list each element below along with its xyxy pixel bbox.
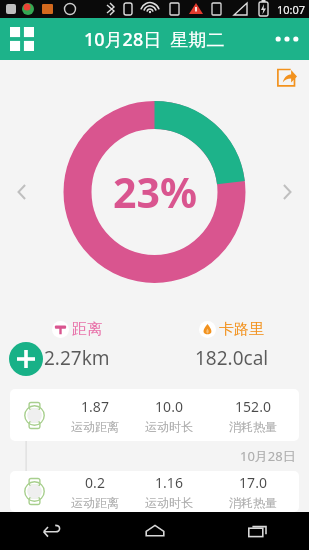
- button[interactable]: Add: [9, 342, 43, 376]
- staticText: 10月28日: [240, 447, 296, 465]
- staticText: 消耗热量: [229, 495, 277, 510]
- staticText: 消耗热量: [229, 419, 277, 434]
- staticText: 运动时长: [145, 419, 193, 434]
- button[interactable]: Back: [0, 512, 103, 550]
- staticText: 2.27km: [44, 345, 110, 371]
- button[interactable]: Share: [271, 62, 301, 92]
- button[interactable]: Recent apps: [206, 512, 309, 550]
- button[interactable]: Previous day: [6, 176, 38, 208]
- button[interactable]: More options: [267, 19, 307, 59]
- staticText: 卡路里: [219, 320, 264, 339]
- staticText: 1.16: [155, 473, 183, 492]
- staticText: 10:07: [277, 2, 306, 17]
- staticText: 1.87: [81, 397, 109, 416]
- staticText: 运动距离: [71, 419, 119, 434]
- staticText: 10.0: [155, 397, 183, 416]
- staticText: 0.2: [85, 473, 105, 492]
- button[interactable]: 0.2: [10, 471, 299, 512]
- staticText: 10月28日 星期二: [84, 27, 225, 52]
- staticText: 152.0: [235, 397, 271, 416]
- staticText: 运动时长: [145, 495, 193, 510]
- button[interactable]: Home: [103, 512, 206, 550]
- button[interactable]: 1.87: [10, 389, 299, 441]
- staticText: 运动距离: [71, 495, 119, 510]
- button[interactable]: 卡路里: [154, 320, 309, 371]
- button[interactable]: Menu: [4, 21, 40, 57]
- button[interactable]: 距离: [0, 320, 154, 371]
- button[interactable]: Next day: [271, 176, 303, 208]
- staticText: 17.0: [239, 473, 267, 492]
- staticText: 182.0cal: [195, 345, 269, 371]
- staticText: 23%: [113, 164, 197, 220]
- staticText: 距离: [72, 320, 102, 339]
